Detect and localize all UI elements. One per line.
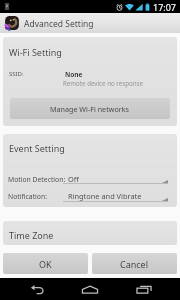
staticText: Wi-Fi Setting (9, 46, 62, 58)
button[interactable]: App icon (4, 15, 20, 31)
button[interactable]: Manage Wi-Fi networks (10, 98, 170, 119)
staticText: Event Setting (9, 142, 65, 154)
staticText: Ringtone and Vibrate (68, 191, 142, 201)
button[interactable]: Cancel (92, 253, 177, 274)
staticText: Advanced Setting (24, 18, 94, 30)
staticText: Manage Wi-Fi networks (50, 104, 130, 114)
staticText: Cancel (120, 258, 149, 270)
button[interactable]: Recent apps (127, 278, 161, 300)
staticText: OK (39, 258, 52, 270)
button[interactable]: OK (3, 253, 88, 274)
staticText: Off (68, 174, 79, 184)
staticText: Remote device no response (63, 79, 144, 87)
button[interactable]: Off (64, 170, 168, 190)
button[interactable]: Back (20, 278, 54, 300)
staticText: None (65, 70, 83, 79)
staticText: Notification: (8, 192, 47, 201)
staticText: SSID: (9, 70, 24, 78)
button[interactable]: Ringtone and Vibrate (64, 187, 168, 207)
staticText: Time Zone (9, 229, 54, 241)
staticText: 17:07 (153, 1, 177, 13)
staticText: Motion Detection: (8, 175, 66, 184)
button[interactable]: Home (73, 278, 107, 300)
